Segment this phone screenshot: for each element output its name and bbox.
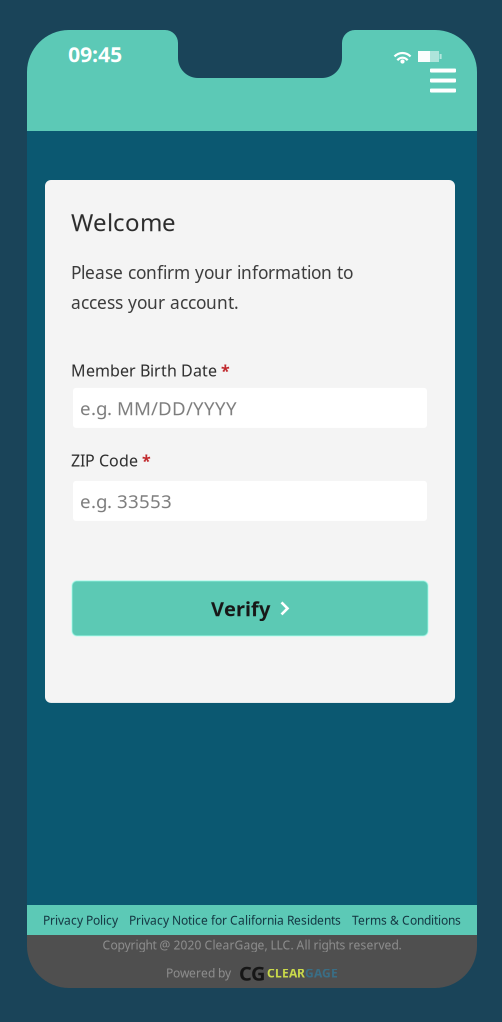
button[interactable]: Privacy Notice for California Residents [129, 912, 341, 928]
staticText: Welcome [71, 206, 176, 238]
staticText: GAGE [305, 965, 338, 981]
staticText: Privacy Policy [43, 912, 118, 928]
staticText: * [221, 360, 230, 381]
button[interactable]: Verify [71, 581, 429, 636]
staticText: CG [239, 960, 265, 986]
staticText: access your account. [71, 291, 239, 314]
button[interactable]: Menu [418, 56, 468, 104]
staticText: ZIP Code [71, 450, 138, 471]
staticText: Copyright @ 2020 ClearGage, LLC. All rig… [102, 937, 401, 953]
staticText: Terms & Conditions [352, 912, 461, 928]
staticText: * [142, 450, 151, 471]
button[interactable]: Privacy Policy [43, 912, 118, 928]
staticText: e.g. 33553 [80, 488, 172, 513]
staticText: Powered by [166, 965, 231, 981]
staticText: Privacy Notice for California Residents [129, 912, 341, 928]
staticText: CLEAR [267, 965, 305, 981]
staticText: Verify [211, 595, 270, 622]
staticText: 09:45 [68, 40, 122, 68]
staticText: e.g. MM/DD/YYYY [80, 395, 237, 420]
button[interactable]: e.g. 33553 [71, 481, 429, 521]
staticText: Please confirm your information to [71, 261, 353, 284]
button[interactable]: e.g. MM/DD/YYYY [71, 388, 429, 428]
staticText: Member Birth Date [71, 360, 217, 381]
button[interactable]: Terms & Conditions [352, 912, 461, 928]
